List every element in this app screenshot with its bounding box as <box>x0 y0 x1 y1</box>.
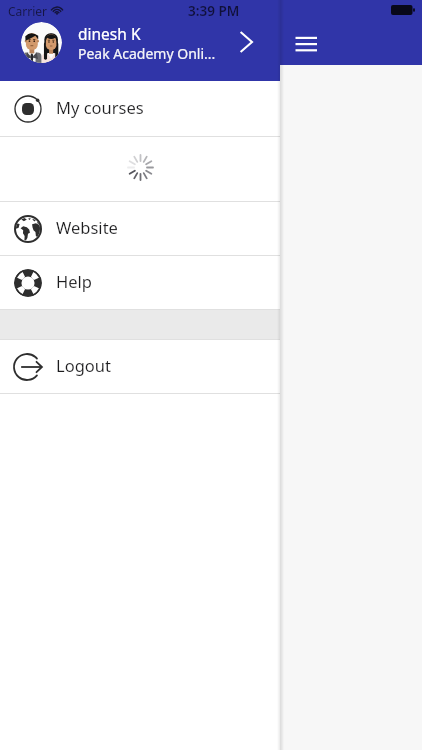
staticText: Carrier <box>8 3 48 19</box>
button[interactable]: dinesh K <box>0 0 280 81</box>
button[interactable]: My courses <box>0 81 280 136</box>
staticText: Peak Academy Onli... <box>78 44 230 63</box>
staticText: My courses <box>56 96 144 118</box>
staticText: Website <box>56 216 118 238</box>
button[interactable]: Help <box>0 256 280 309</box>
staticText: Help <box>56 270 92 292</box>
staticText: dinesh K <box>78 23 141 44</box>
button[interactable]: Website <box>0 202 280 255</box>
staticText: 3:39 PM <box>188 2 240 20</box>
button[interactable]: Open navigation menu <box>289 29 323 63</box>
button[interactable]: Logout <box>0 340 280 393</box>
button[interactable]: Open user profile <box>232 24 268 60</box>
staticText: Logout <box>56 354 111 376</box>
